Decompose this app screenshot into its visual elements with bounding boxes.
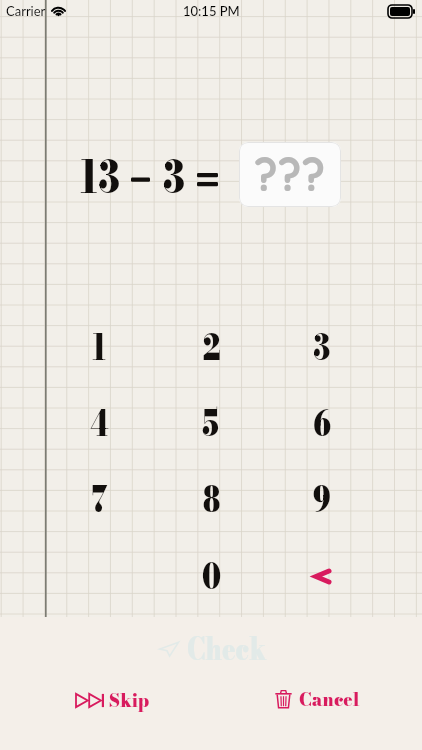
staticText: 2 (202, 321, 221, 374)
staticText: Skip (109, 686, 150, 714)
staticText: 3 (163, 142, 185, 211)
button[interactable]: 1 (54, 317, 144, 377)
button[interactable]: 8 (166, 469, 256, 529)
staticText: 7 (91, 473, 108, 526)
staticText: 5 (203, 397, 219, 450)
staticText: 1 (91, 321, 107, 374)
button[interactable]: Backspace (277, 546, 367, 606)
staticText: 0 (201, 550, 221, 603)
staticText: 13 (79, 142, 120, 211)
button[interactable]: 4 (54, 393, 144, 453)
staticText: 10:15 PM (183, 3, 240, 19)
staticText: Check (187, 625, 267, 673)
button[interactable]: ??? (239, 142, 341, 207)
staticText: 3 (313, 321, 331, 374)
button[interactable]: 7 (54, 469, 144, 529)
staticText: 4 (89, 397, 109, 450)
button[interactable]: 9 (277, 469, 367, 529)
staticText: ??? (254, 146, 326, 202)
staticText: 9 (312, 473, 332, 526)
button[interactable]: 6 (277, 393, 367, 453)
button[interactable]: 0 (166, 546, 256, 606)
button[interactable]: Check (159, 624, 292, 674)
staticText: Carrier (6, 3, 46, 19)
staticText: 8 (202, 473, 221, 526)
button[interactable]: Cancel (275, 683, 373, 715)
button[interactable]: Skip (76, 684, 159, 716)
button[interactable]: 5 (166, 393, 256, 453)
button[interactable]: 2 (166, 317, 256, 377)
button[interactable]: 3 (277, 317, 367, 377)
staticText: Cancel (299, 685, 360, 713)
staticText: 6 (312, 397, 332, 450)
